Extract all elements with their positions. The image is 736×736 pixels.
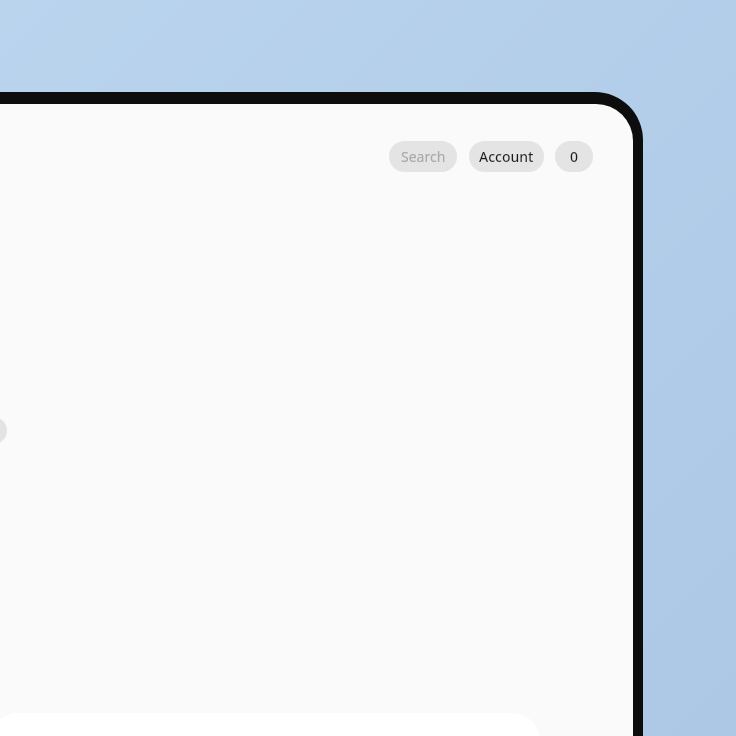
button[interactable]: Account xyxy=(469,141,544,172)
button[interactable]: Search xyxy=(389,141,457,172)
button[interactable]: 0 xyxy=(555,141,593,172)
staticText: 0 xyxy=(570,147,579,166)
staticText: Account xyxy=(479,147,534,166)
staticText: Search xyxy=(401,147,446,166)
